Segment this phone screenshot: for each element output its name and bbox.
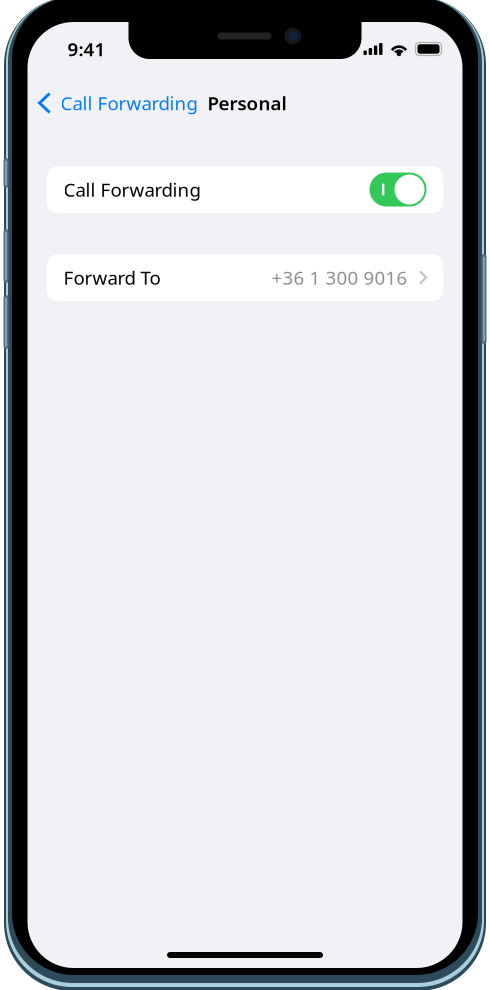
- staticText: Personal: [207, 91, 286, 115]
- button[interactable]: Call Forwarding: [46, 166, 443, 213]
- staticText: Forward To: [63, 265, 160, 290]
- button[interactable]: Call Forwarding: [27, 86, 197, 120]
- staticText: 9:41: [67, 37, 105, 61]
- staticText: Call Forwarding: [60, 91, 197, 115]
- button[interactable]: Forward To: [46, 254, 443, 301]
- staticText: Call Forwarding: [63, 177, 200, 202]
- staticText: +36 1 300 9016: [271, 265, 407, 290]
- button[interactable]: Personal: [197, 86, 286, 120]
